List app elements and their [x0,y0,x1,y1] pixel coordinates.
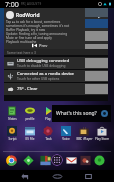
staticText: 75° - Clear [17,86,38,92]
staticText: 7:00 [5,0,19,8]
staticText: Connected as a media device [17,71,74,77]
staticText: profile [25,117,35,121]
button[interactable]: ES File Explorer [21,126,39,141]
staticText: FRI, AUGUST 9 [21,2,42,6]
button[interactable]: Evernote [23,155,34,166]
button[interactable]: Script [3,126,21,141]
button[interactable]: BBC iPlayer [75,126,93,141]
staticText: BBC iPlayer [76,137,93,141]
button[interactable]: Gallery [40,155,51,166]
button[interactable]: Photos [80,155,91,166]
staticText: Tap ▸▸ to ask for a boost, sometimes som… [6,20,70,44]
staticText: Script [8,137,17,141]
button[interactable]: profile [21,106,39,121]
button[interactable]: Notes [3,106,21,121]
button[interactable]: Play Store [93,126,111,141]
button[interactable]: Messenger [94,155,105,166]
staticText: Touch to disable USB debugging [17,64,66,68]
staticText: Play Store [95,137,109,141]
button[interactable]: Gmail [66,155,77,166]
staticText: Touch for other USB options [17,77,60,81]
button[interactable]: Home [52,171,63,182]
button[interactable]: RodWorld [4,8,108,55]
button[interactable]: USB debugging connected [4,57,108,69]
button[interactable]: Back [20,171,31,182]
button[interactable]: Voice [57,126,75,141]
staticText: Prev [39,43,48,48]
button[interactable]: All apps [51,154,63,166]
button[interactable]: 75° - Clear [4,83,108,95]
staticText: Some text here x 3 [7,50,36,54]
other: Previous [32,43,37,48]
staticText: Play [45,117,51,121]
button[interactable]: Recent apps [83,171,94,182]
staticText: USB debugging connected [17,58,70,64]
staticText: Notes [8,117,17,121]
staticText: Task [45,137,52,141]
button[interactable]: What's this song? [52,105,111,122]
staticText: ES File Explorer [21,137,39,141]
button[interactable]: Task [39,126,57,141]
button[interactable]: Connected as a media device [4,70,108,82]
staticText: RodWorld [16,12,40,19]
button[interactable]: Chrome [6,155,17,166]
staticText: What's this song? [56,110,97,117]
staticText: Voice [62,137,70,141]
button[interactable]: Play [39,106,57,121]
